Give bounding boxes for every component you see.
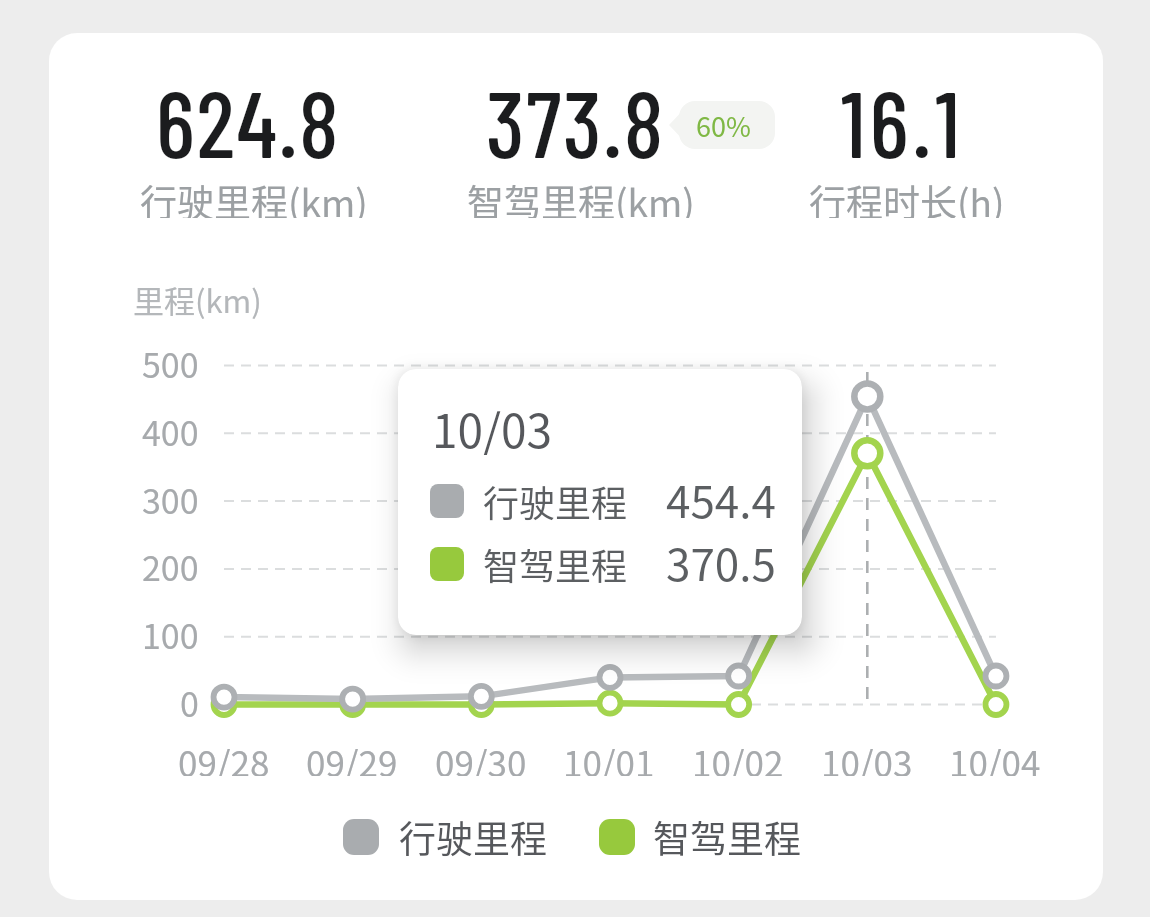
staticText: 373.8 bbox=[486, 66, 666, 166]
staticText: 智驾里程 bbox=[653, 810, 801, 864]
staticText: 10/03 bbox=[432, 395, 553, 455]
staticText: 行驶里程(km) bbox=[140, 174, 368, 218]
staticText: 行驶里程 bbox=[483, 475, 628, 527]
staticText: 09/30 bbox=[435, 736, 527, 776]
staticText: 454.4 bbox=[666, 467, 776, 519]
staticText: 10/01 bbox=[563, 736, 655, 776]
staticText: 400 bbox=[142, 407, 199, 451]
staticText: 100 bbox=[142, 610, 199, 654]
staticText: 09/28 bbox=[178, 736, 270, 776]
staticText: 370.5 bbox=[666, 530, 776, 582]
staticText: 09/29 bbox=[306, 736, 398, 776]
staticText: 10/02 bbox=[692, 736, 784, 776]
staticText: 200 bbox=[142, 542, 199, 586]
staticText: 行程时长(h) bbox=[809, 174, 1005, 218]
staticText: 60% bbox=[696, 106, 751, 145]
staticText: 智驾里程(km) bbox=[467, 174, 695, 218]
staticText: 0 bbox=[180, 678, 199, 722]
staticText: 10/04 bbox=[949, 736, 1041, 776]
staticText: 里程(km) bbox=[133, 277, 262, 321]
button[interactable]: 智驾里程 bbox=[599, 810, 801, 864]
staticText: 300 bbox=[142, 475, 199, 519]
staticText: 10/03 bbox=[821, 736, 913, 776]
button[interactable]: 60% bbox=[679, 101, 775, 149]
staticText: 16.1 bbox=[841, 66, 964, 166]
button[interactable] bbox=[398, 369, 802, 635]
staticText: 500 bbox=[142, 339, 199, 383]
staticText: 624.8 bbox=[156, 66, 341, 166]
staticText: 行驶里程 bbox=[399, 810, 547, 864]
staticText: 智驾里程 bbox=[483, 538, 628, 590]
button[interactable]: 行驶里程 bbox=[343, 810, 547, 864]
